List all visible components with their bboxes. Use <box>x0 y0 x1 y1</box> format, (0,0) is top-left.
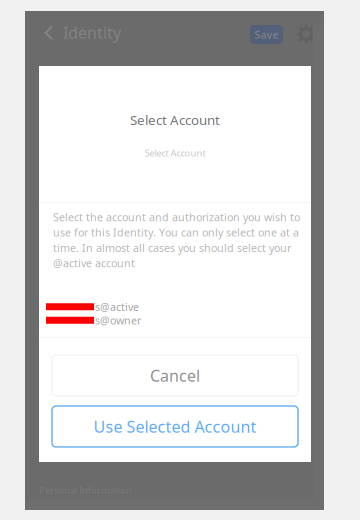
staticText: Use Selected Account <box>93 416 256 437</box>
button[interactable]: Cancel <box>52 355 298 396</box>
staticText: s@active <box>95 300 139 314</box>
staticText: Personal Information <box>39 484 132 496</box>
staticText: Select the account and authorization you… <box>53 210 300 270</box>
staticText: Cancel <box>150 365 200 386</box>
button[interactable]: Save <box>250 25 283 44</box>
button[interactable]: s@owner <box>46 313 296 327</box>
staticText: s@owner <box>95 313 141 327</box>
staticText: Save <box>254 27 278 42</box>
staticText: Select Account <box>130 111 220 129</box>
button[interactable]: Use Selected Account <box>52 406 298 447</box>
staticText: Select Account <box>144 147 205 159</box>
button[interactable]: s@active <box>46 300 296 313</box>
button[interactable]: Settings <box>293 21 319 47</box>
staticText: Identity <box>63 22 121 43</box>
button[interactable]: Back <box>36 16 62 50</box>
